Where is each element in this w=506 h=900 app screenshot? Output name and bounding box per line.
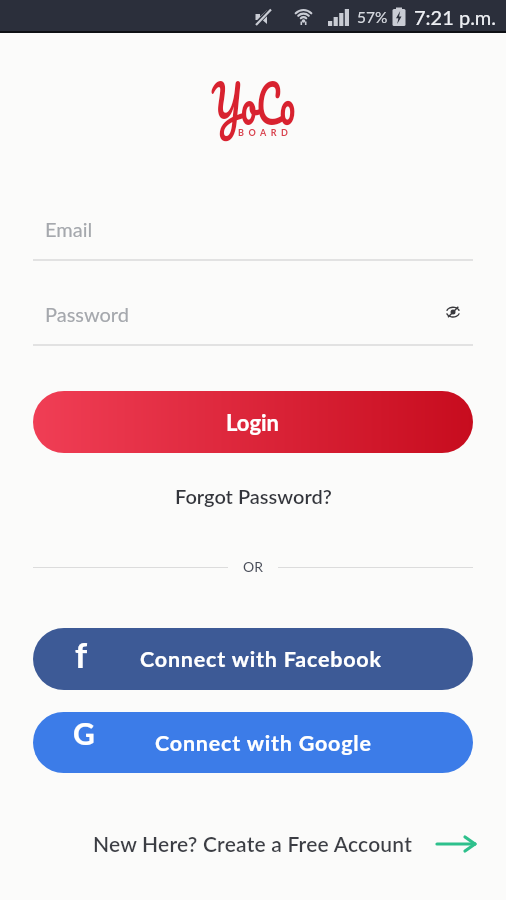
staticText: f bbox=[75, 634, 88, 675]
staticText: 57% bbox=[357, 8, 388, 27]
staticText: BOARD bbox=[238, 127, 293, 138]
staticText: Connect with Google bbox=[155, 730, 372, 756]
staticText: OR bbox=[243, 558, 263, 575]
staticText: Login bbox=[226, 409, 280, 435]
button[interactable]: Login bbox=[33, 391, 473, 453]
staticText: G bbox=[73, 715, 95, 751]
button[interactable]: Email bbox=[33, 210, 473, 261]
button[interactable]: f bbox=[33, 628, 473, 690]
staticText: Forgot Password? bbox=[175, 484, 332, 508]
staticText: Email bbox=[45, 217, 93, 241]
staticText: 7:21 p.m. bbox=[414, 5, 497, 29]
staticText: Password bbox=[45, 302, 129, 326]
button[interactable]: Forgot Password? bbox=[175, 484, 332, 508]
staticText: YoCo bbox=[212, 57, 295, 148]
staticText: Connect with Facebook bbox=[140, 646, 382, 672]
button[interactable]: New Here? Create a Free Account bbox=[93, 831, 477, 856]
staticText: New Here? Create a Free Account bbox=[93, 831, 413, 856]
button[interactable]: G bbox=[33, 712, 473, 773]
button[interactable]: Password bbox=[33, 295, 473, 346]
